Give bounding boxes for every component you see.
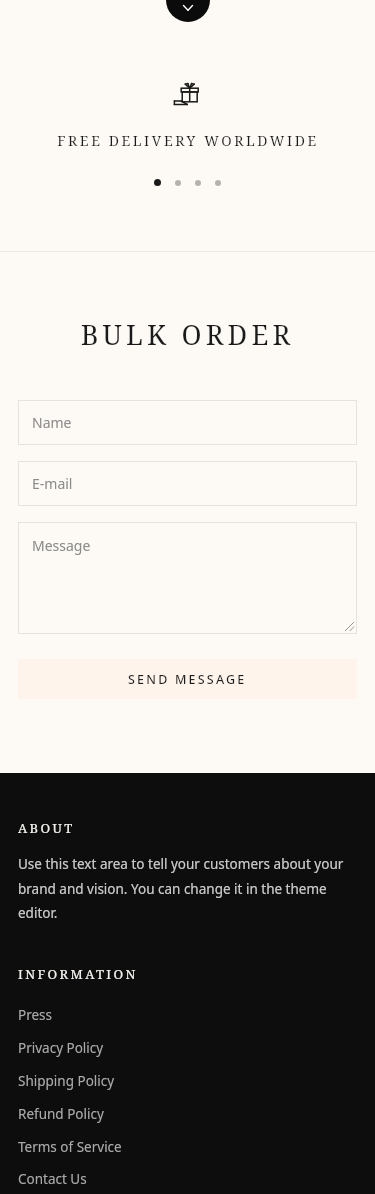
staticText: Press [18, 1006, 53, 1024]
staticText: E-mail [32, 474, 73, 493]
staticText: Use this text area to tell your customer… [18, 855, 357, 922]
button[interactable]: Scroll down [166, 0, 210, 22]
button[interactable]: Contact Us [18, 1163, 357, 1194]
staticText: Message [32, 536, 91, 555]
button[interactable]: Refund Policy [18, 1097, 357, 1130]
button[interactable]: Press [18, 998, 357, 1031]
staticText: Terms of Service [18, 1138, 122, 1156]
button[interactable] [175, 180, 181, 186]
button[interactable] [215, 180, 221, 186]
button[interactable]: SEND MESSAGE [18, 659, 357, 699]
button[interactable]: Message [18, 522, 357, 634]
button[interactable] [195, 180, 201, 186]
button[interactable]: Privacy Policy [18, 1031, 357, 1064]
button[interactable]: Terms of Service [18, 1130, 357, 1163]
staticText: Name [32, 413, 72, 432]
staticText: ABOUT [18, 819, 75, 837]
staticText: Privacy Policy [18, 1039, 104, 1057]
button[interactable]: Shipping Policy [18, 1064, 357, 1097]
button[interactable]: E-mail [18, 461, 357, 506]
staticText: Contact Us [18, 1170, 87, 1188]
staticText: FREE DELIVERY WORLDWIDE [57, 131, 319, 150]
button[interactable] [154, 179, 161, 186]
staticText: Refund Policy [18, 1105, 104, 1123]
staticText: SEND MESSAGE [128, 671, 247, 688]
button[interactable]: Name [18, 400, 357, 445]
staticText: Shipping Policy [18, 1072, 115, 1090]
staticText: BULK ORDER [0, 316, 375, 353]
staticText: INFORMATION [18, 965, 138, 983]
